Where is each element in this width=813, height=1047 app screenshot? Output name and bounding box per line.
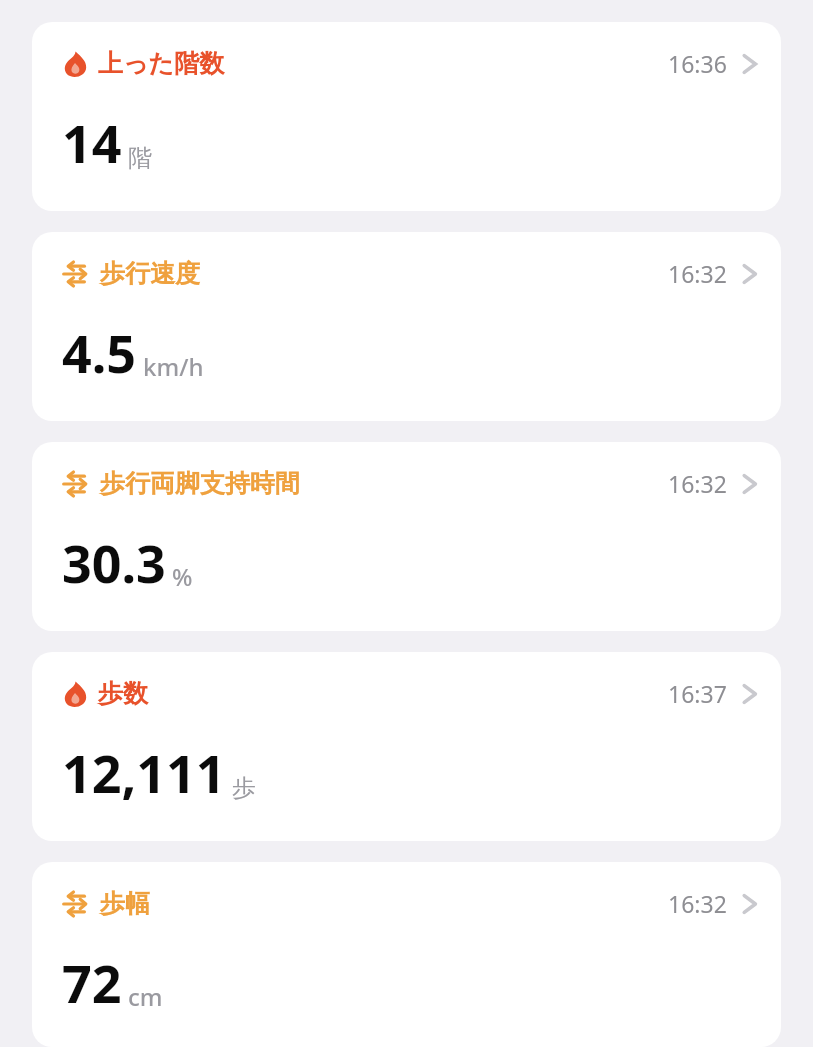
other: Open details <box>741 49 759 79</box>
button[interactable]: Walking <box>32 232 781 421</box>
staticText: 階 <box>128 143 152 173</box>
staticText: 4.5 <box>62 317 137 388</box>
staticText: 16:36 <box>668 48 727 79</box>
staticText: 16:37 <box>668 678 727 709</box>
other: Open details <box>741 259 759 289</box>
other: Open details <box>741 469 759 499</box>
button[interactable]: Flame <box>32 22 781 211</box>
staticText: 16:32 <box>668 468 727 499</box>
other: Open details <box>741 679 759 709</box>
other: Walking <box>62 470 90 498</box>
other: Open details <box>741 889 759 919</box>
other: Flame <box>62 51 88 77</box>
staticText: km/h <box>143 350 204 383</box>
staticText: 12,111 <box>62 737 226 808</box>
staticText: 上った階数 <box>98 48 225 79</box>
staticText: 歩行速度 <box>100 258 200 289</box>
staticText: 16:32 <box>668 258 727 289</box>
staticText: 16:32 <box>668 888 727 919</box>
staticText: cm <box>128 980 163 1013</box>
staticText: 72 <box>62 947 122 1018</box>
staticText: 30.3 <box>62 527 166 598</box>
staticText: 歩数 <box>98 678 148 709</box>
button[interactable]: Walking <box>32 862 781 1047</box>
staticText: 歩行両脚支持時間 <box>100 468 300 499</box>
button[interactable]: Flame <box>32 652 781 841</box>
other: Walking <box>62 260 90 288</box>
staticText: 歩 <box>232 773 256 803</box>
staticText: % <box>172 560 193 593</box>
button[interactable]: Walking <box>32 442 781 631</box>
other: Walking <box>62 890 90 918</box>
staticText: 14 <box>62 107 122 178</box>
staticText: 歩幅 <box>100 888 150 919</box>
other: Flame <box>62 681 88 707</box>
